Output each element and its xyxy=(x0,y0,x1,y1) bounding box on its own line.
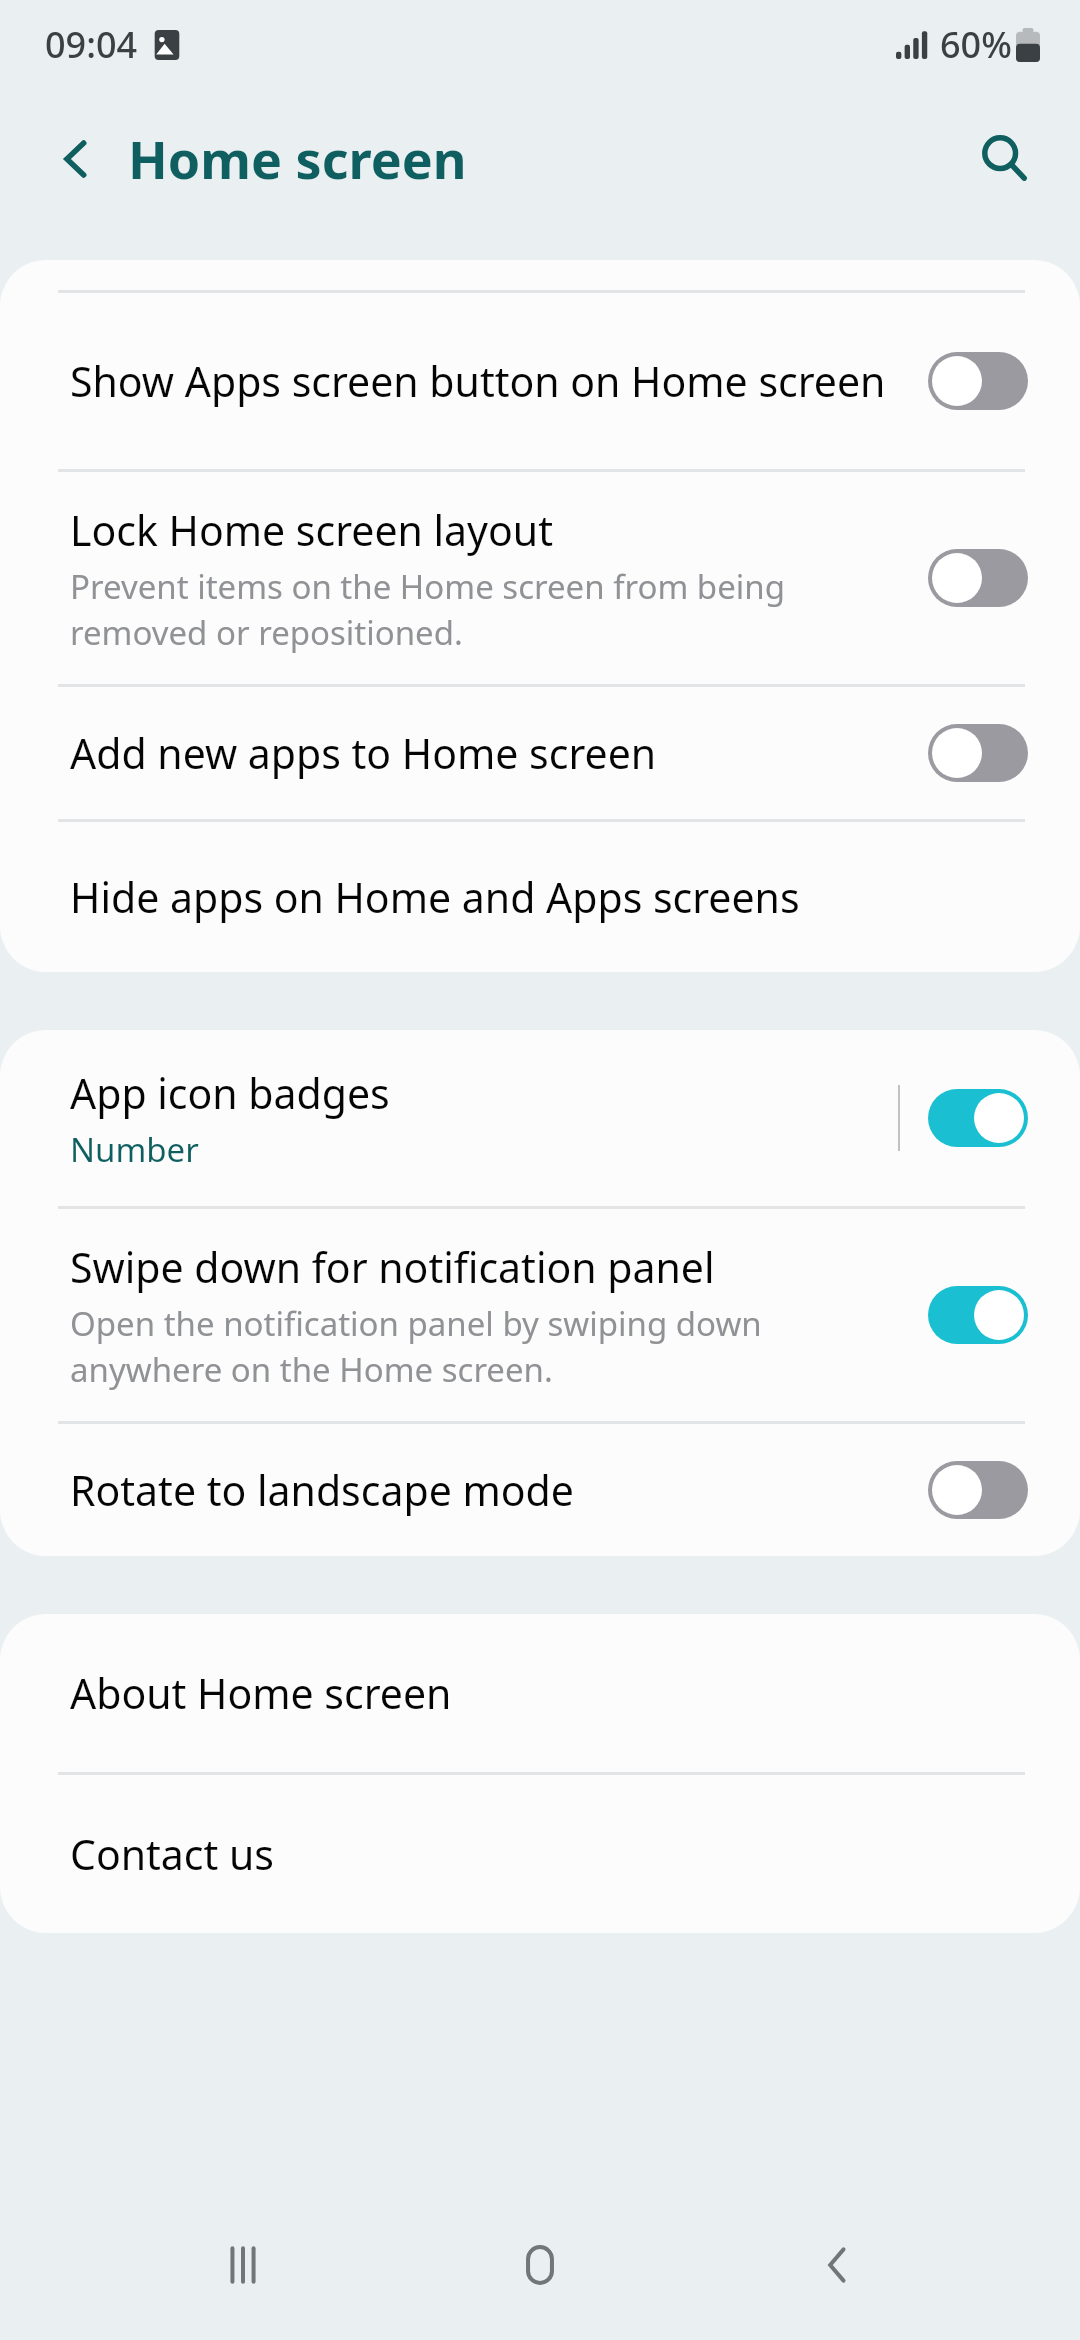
staticText: Prevent items on the Home screen from be… xyxy=(70,564,900,655)
button[interactable]: Contact us xyxy=(0,1775,1080,1933)
button[interactable]: Toggle off xyxy=(928,549,1028,607)
staticText: Home screen xyxy=(128,123,467,194)
button[interactable]: Home xyxy=(485,2210,595,2320)
button[interactable]: Toggle off xyxy=(928,352,1028,410)
button[interactable]: Lock Home screen layout xyxy=(0,472,1080,684)
staticText: 60% xyxy=(940,20,1012,69)
button[interactable]: Add new apps to Home screen xyxy=(0,687,1080,819)
staticText: Lock Home screen layout xyxy=(70,502,553,558)
staticText: About Home screen xyxy=(70,1665,452,1721)
button[interactable]: Show Apps screen button on Home screen xyxy=(0,293,1080,469)
staticText: Add new apps to Home screen xyxy=(70,725,657,781)
button[interactable]: Toggle on xyxy=(928,1286,1028,1344)
button[interactable]: Swipe down for notification panel xyxy=(0,1209,1080,1421)
staticText: 09:04 xyxy=(45,20,138,69)
button[interactable]: Toggle off xyxy=(928,1461,1028,1519)
button[interactable]: Search xyxy=(964,118,1044,198)
staticText: Contact us xyxy=(70,1826,274,1882)
button[interactable]: App icon badges xyxy=(0,1030,1080,1206)
staticText: Show Apps screen button on Home screen xyxy=(70,353,886,409)
button[interactable]: About Home screen xyxy=(0,1614,1080,1772)
staticText: Swipe down for notification panel xyxy=(70,1239,715,1295)
staticText: Open the notification panel by swiping d… xyxy=(70,1301,900,1392)
staticText: Hide apps on Home and Apps screens xyxy=(70,869,800,925)
button[interactable]: Recent apps xyxy=(188,2210,298,2320)
button[interactable]: Toggle on xyxy=(928,1089,1028,1147)
staticText: Number xyxy=(70,1127,199,1172)
button[interactable]: Toggle off xyxy=(928,724,1028,782)
button[interactable]: Hide apps on Home and Apps screens xyxy=(0,822,1080,972)
button[interactable]: Rotate to landscape mode xyxy=(0,1424,1080,1556)
staticText: App icon badges xyxy=(70,1065,390,1121)
button[interactable]: Back xyxy=(42,124,112,194)
staticText: Rotate to landscape mode xyxy=(70,1462,574,1518)
button[interactable]: Back xyxy=(783,2210,893,2320)
